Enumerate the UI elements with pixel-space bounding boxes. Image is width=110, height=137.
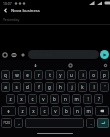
button[interactable]: q: [1, 70, 10, 80]
button[interactable]: ': [100, 82, 109, 92]
button[interactable]: d: [23, 82, 32, 92]
button[interactable]: y: [56, 70, 65, 80]
button[interactable]: x: [29, 106, 38, 116]
button[interactable]: Clipboard: [67, 62, 73, 68]
staticText: ': [104, 84, 106, 90]
button[interactable]: x: [17, 94, 26, 104]
staticText: c: [31, 96, 34, 102]
staticText: e: [26, 72, 29, 78]
staticText: p: [103, 72, 106, 78]
staticText: !: [87, 96, 89, 102]
button[interactable]: v: [39, 94, 48, 104]
staticText: g: [48, 84, 51, 90]
staticText: b: [53, 96, 56, 102]
staticText: j: [71, 84, 73, 90]
button[interactable]: c: [28, 94, 37, 104]
button[interactable]: Back: [0, 6, 11, 15]
button[interactable]: h: [56, 82, 65, 92]
staticText: Nova business: [11, 8, 40, 14]
button[interactable]: r: [34, 70, 43, 80]
button[interactable]: c: [40, 106, 49, 116]
button[interactable]: Settings: [102, 62, 108, 68]
staticText: u: [70, 72, 73, 78]
button[interactable]: f: [34, 82, 43, 92]
button[interactable]: m: [84, 106, 93, 116]
button[interactable]: b: [62, 106, 71, 116]
staticText: d: [26, 84, 29, 90]
staticText: n: [64, 96, 67, 102]
staticText: m: [74, 96, 79, 102]
button[interactable]: [25, 118, 84, 128]
button[interactable]: z: [18, 106, 27, 116]
staticText: i: [82, 72, 84, 78]
staticText: k: [81, 84, 84, 90]
staticText: w: [15, 72, 19, 78]
button[interactable]: Send: [100, 50, 109, 59]
button[interactable]: ?: [94, 94, 103, 104]
staticText: h: [59, 84, 62, 90]
button[interactable]: [97, 118, 109, 128]
button[interactable]: j: [67, 82, 76, 92]
button[interactable]: s: [12, 82, 21, 92]
staticText: s: [15, 84, 18, 90]
button[interactable]: .: [86, 118, 95, 128]
staticText: Yesterday: [3, 17, 20, 22]
staticText: x: [20, 96, 23, 102]
button[interactable]: l: [89, 82, 98, 92]
button[interactable]: Add attachment: [1, 51, 9, 59]
button[interactable]: z: [6, 94, 15, 104]
button[interactable]: e: [23, 70, 32, 80]
staticText: ,: [18, 120, 20, 126]
staticText: o: [92, 72, 95, 78]
button[interactable]: m: [72, 94, 81, 104]
button[interactable]: ?123: [1, 118, 12, 128]
staticText: z: [9, 96, 12, 102]
button[interactable]: w: [12, 70, 21, 80]
button[interactable]: i: [78, 70, 87, 80]
button[interactable]: ,: [14, 118, 23, 128]
button[interactable]: n: [73, 106, 82, 116]
button[interactable]: p: [100, 70, 109, 80]
staticText: r: [38, 72, 40, 78]
button[interactable]: Camera: [10, 51, 18, 59]
staticText: a: [4, 84, 7, 90]
staticText: q: [4, 72, 7, 78]
staticText: b: [65, 108, 68, 114]
staticText: f: [38, 84, 40, 90]
staticText: .: [90, 120, 92, 126]
button[interactable]: Gallery: [19, 51, 27, 59]
button[interactable]: n: [61, 94, 70, 104]
button[interactable]: Text message: [28, 50, 99, 59]
staticText: v: [54, 108, 57, 114]
button[interactable]: [1, 106, 16, 116]
staticText: c: [43, 108, 46, 114]
button[interactable]: Voice input: [32, 62, 38, 68]
staticText: 10:07: [3, 1, 12, 6]
button[interactable]: [95, 106, 109, 116]
staticText: v: [42, 96, 45, 102]
button[interactable]: !: [83, 94, 92, 104]
staticText: l: [93, 84, 95, 90]
staticText: y: [59, 72, 62, 78]
staticText: m: [86, 108, 91, 114]
button[interactable]: u: [67, 70, 76, 80]
button[interactable]: v: [51, 106, 60, 116]
button[interactable]: t: [45, 70, 54, 80]
button[interactable]: g: [45, 82, 54, 92]
staticText: z: [21, 108, 24, 114]
staticText: x: [32, 108, 35, 114]
button[interactable]: b: [50, 94, 59, 104]
staticText: n: [76, 108, 79, 114]
button[interactable]: a: [1, 82, 10, 92]
staticText: t: [49, 72, 51, 78]
staticText: ?123: [3, 121, 10, 125]
button[interactable]: o: [89, 70, 98, 80]
button[interactable]: k: [78, 82, 87, 92]
staticText: ?: [98, 96, 100, 102]
